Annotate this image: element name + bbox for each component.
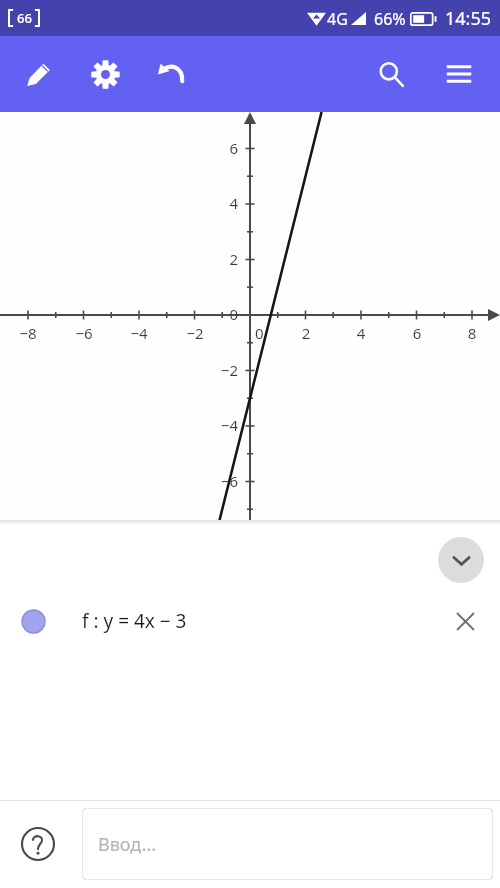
- staticText: 66%: [374, 8, 406, 30]
- staticText: 4: [192, 193, 238, 213]
- button[interactable]: Ввод...: [82, 808, 493, 880]
- staticText: −8: [8, 323, 48, 343]
- staticText: −4: [119, 323, 159, 343]
- button[interactable]: Help: [16, 822, 60, 866]
- staticText: 6: [192, 138, 238, 158]
- staticText: 14:55: [445, 6, 492, 31]
- staticText: 66: [17, 9, 32, 27]
- staticText: −2: [175, 323, 215, 343]
- staticText: 6: [397, 323, 437, 343]
- staticText: 2: [192, 249, 238, 269]
- staticText: −4: [192, 415, 238, 435]
- staticText: f : y = 4x − 3: [82, 608, 187, 634]
- button[interactable]: Menu: [435, 50, 483, 98]
- staticText: 0: [192, 304, 238, 324]
- staticText: 4: [341, 323, 381, 343]
- button[interactable]: Collapse: [438, 537, 484, 583]
- staticText: 2: [286, 323, 326, 343]
- staticText: −6: [64, 323, 104, 343]
- staticText: 0: [255, 323, 264, 343]
- staticText: −2: [192, 360, 238, 380]
- button[interactable]: Delete: [443, 599, 487, 643]
- button[interactable]: Settings: [81, 50, 129, 98]
- staticText: −6: [192, 471, 238, 491]
- button[interactable]: Edit: [14, 50, 62, 98]
- button[interactable]: Search: [367, 50, 415, 98]
- staticText: Ввод...: [98, 832, 157, 857]
- staticText: 8: [452, 323, 492, 343]
- staticText: 4G: [327, 8, 348, 30]
- button[interactable]: Undo: [148, 50, 196, 98]
- button[interactable]: f : y = 4x − 3: [0, 594, 500, 648]
